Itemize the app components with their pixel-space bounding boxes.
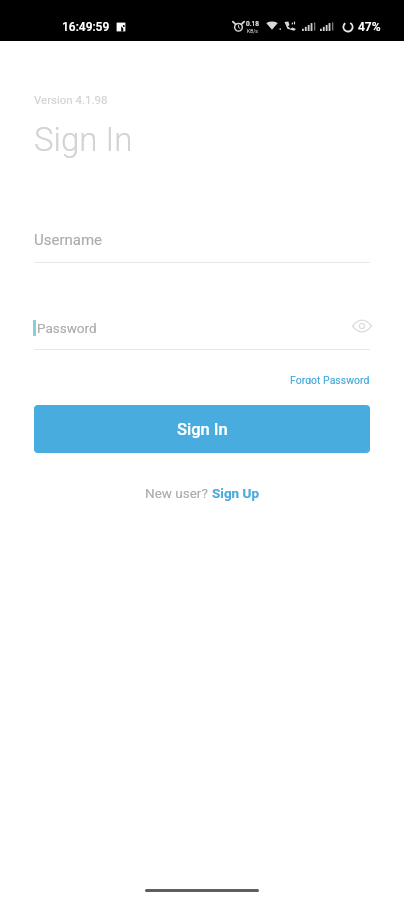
staticText: KB/s (247, 28, 258, 34)
staticText: Forgot Password (290, 374, 370, 384)
button[interactable]: Username (34, 231, 370, 263)
button[interactable]: Sign In (34, 405, 370, 453)
staticText: Username (34, 231, 103, 249)
staticText: Sign Up (212, 485, 260, 501)
staticText: 47% (358, 20, 381, 34)
staticText: Version 4.1.98 (34, 93, 108, 106)
button[interactable]: Forgot Password (290, 368, 370, 390)
button[interactable]: Show password (340, 310, 384, 342)
staticText: New user? (145, 485, 212, 501)
button[interactable]: Password (34, 316, 370, 350)
staticText: Sign In (177, 420, 228, 439)
staticText: 0.18 (246, 20, 259, 28)
staticText: Password (37, 320, 97, 336)
button[interactable]: Sign Up (212, 485, 260, 501)
staticText: 16:49:59 (62, 20, 110, 34)
staticText: Sign In (34, 120, 133, 159)
